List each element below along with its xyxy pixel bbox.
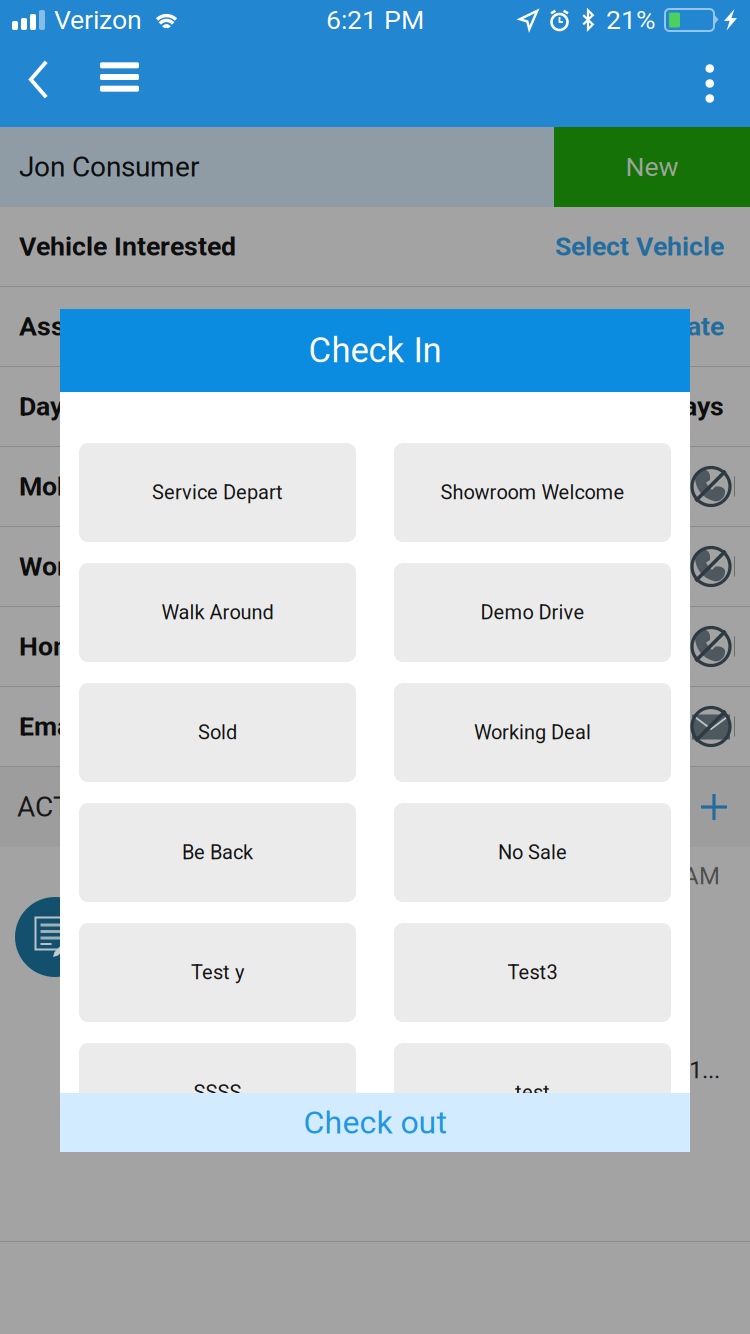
staticText: Select Vehicle — [555, 231, 724, 262]
button[interactable]: More options — [677, 40, 750, 127]
staticText: Be Back — [182, 841, 253, 864]
staticText: Jon Consumer — [19, 151, 199, 183]
button[interactable]: Working Deal — [394, 683, 671, 782]
button[interactable]: test — [394, 1043, 671, 1142]
staticText: Check out — [303, 1104, 446, 1141]
button[interactable]: Work — [0, 527, 750, 607]
staticText: Demo Drive — [480, 601, 584, 624]
staticText: Associate — [605, 311, 724, 342]
button[interactable]: Assigned To — [0, 287, 750, 367]
staticText: Test y — [191, 961, 244, 984]
button[interactable]: Menu — [81, 40, 151, 127]
staticText: Showroom Welcome — [440, 481, 624, 504]
staticText: Vehicle Interested — [19, 231, 236, 262]
staticText: 10:48 AM — [619, 862, 720, 890]
button[interactable]: Days Since — [0, 367, 750, 447]
button[interactable]: Mobile — [0, 447, 750, 527]
button[interactable]: Home — [0, 607, 750, 687]
button[interactable]: Check out — [60, 1093, 690, 1152]
staticText: No Sale — [498, 841, 567, 864]
staticText: SSSS — [193, 1081, 241, 1104]
staticText: Home — [19, 631, 90, 662]
staticText: ACTIVITY — [17, 791, 137, 823]
staticText: Days Since — [19, 391, 150, 422]
staticText: 6:21 PM — [326, 4, 424, 36]
staticText: 2 Days — [644, 391, 724, 422]
staticText: test — [515, 1081, 550, 1104]
button[interactable]: New — [554, 127, 750, 207]
button[interactable]: Be Back — [79, 803, 356, 902]
button[interactable]: Walk Around — [79, 563, 356, 662]
button[interactable]: Vehicle Interested — [0, 207, 750, 287]
button[interactable]: Sold — [79, 683, 356, 782]
staticText: Email — [19, 711, 85, 742]
staticText: Assigned To — [19, 311, 166, 342]
staticText: Working Deal — [474, 721, 591, 744]
staticText: New — [625, 151, 678, 183]
button[interactable]: Service Depart — [79, 443, 356, 542]
staticText: 21% — [606, 4, 656, 36]
button[interactable]: Back — [0, 40, 81, 127]
button[interactable]: Test3 — [394, 923, 671, 1022]
staticText: Work — [19, 551, 81, 582]
button[interactable]: Email — [0, 687, 750, 767]
staticText: Note 1... — [631, 1056, 720, 1084]
staticText: Service Depart — [152, 481, 283, 504]
button[interactable]: Test y — [79, 923, 356, 1022]
button[interactable]: No Sale — [394, 803, 671, 902]
staticText: Mobile — [19, 471, 100, 502]
staticText: Test3 — [507, 961, 557, 984]
staticText: Sold — [198, 721, 237, 744]
staticText: Walk Around — [161, 601, 273, 624]
button[interactable]: Demo Drive — [394, 563, 671, 662]
staticText: Verizon — [54, 4, 142, 36]
button[interactable]: SSSS — [79, 1043, 356, 1142]
staticText: Check In — [308, 330, 441, 371]
button[interactable]: Showroom Welcome — [394, 443, 671, 542]
button[interactable]: Add activity — [692, 785, 736, 829]
